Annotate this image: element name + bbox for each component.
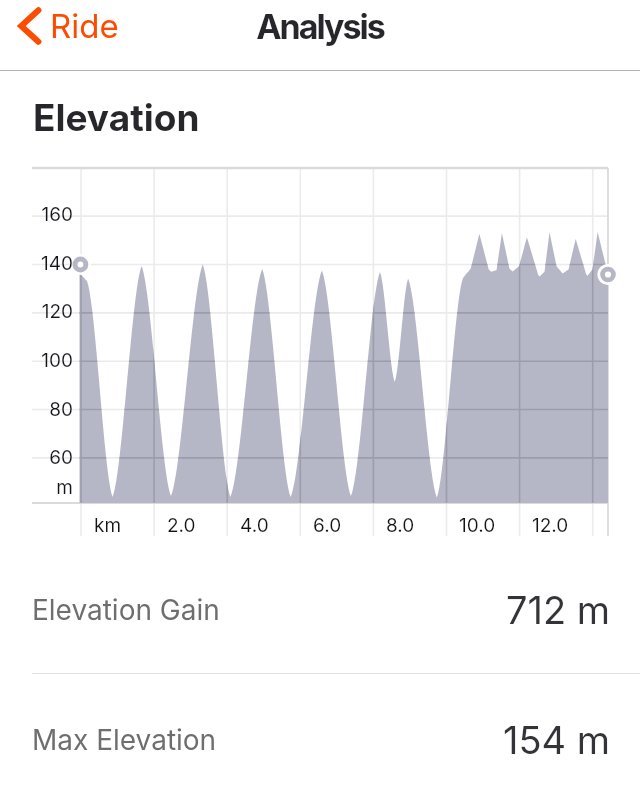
staticText: 80 xyxy=(0,398,73,421)
staticText: Elevation Gain xyxy=(32,593,220,627)
staticText: 100 xyxy=(0,349,73,372)
staticText: 120 xyxy=(0,300,73,323)
staticText: 12.0 xyxy=(532,514,569,537)
button[interactable]: Back to Ride xyxy=(10,2,127,50)
staticText: Elevation xyxy=(33,95,200,140)
staticText: m xyxy=(0,476,73,499)
button[interactable]: Elevation Gain xyxy=(0,546,640,673)
staticText: 140 xyxy=(0,252,73,275)
staticText: 2.0 xyxy=(167,514,196,537)
staticText: Max Elevation xyxy=(32,723,217,757)
staticText: 60 xyxy=(0,446,73,469)
staticText: 8.0 xyxy=(386,514,415,537)
staticText: Ride xyxy=(50,6,119,46)
button[interactable]: Max Elevation xyxy=(0,676,640,800)
staticText: Analysis xyxy=(0,6,640,47)
staticText: km xyxy=(94,514,122,537)
staticText: 154 m xyxy=(503,717,611,763)
staticText: 4.0 xyxy=(240,514,269,537)
staticText: 160 xyxy=(0,203,73,226)
staticText: 712 m xyxy=(506,587,611,633)
staticText: 10.0 xyxy=(459,514,496,537)
staticText: 6.0 xyxy=(313,514,342,537)
